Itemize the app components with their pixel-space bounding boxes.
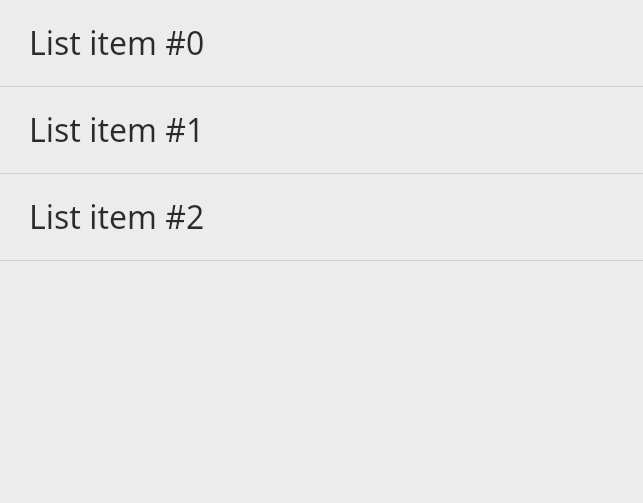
button[interactable]: List item #0 [0,0,643,86]
staticText: List item #2 [29,195,205,239]
button[interactable]: List item #1 [0,87,643,173]
staticText: List item #0 [29,21,205,65]
staticText: List item #1 [29,108,205,152]
button[interactable]: List item #2 [0,174,643,260]
